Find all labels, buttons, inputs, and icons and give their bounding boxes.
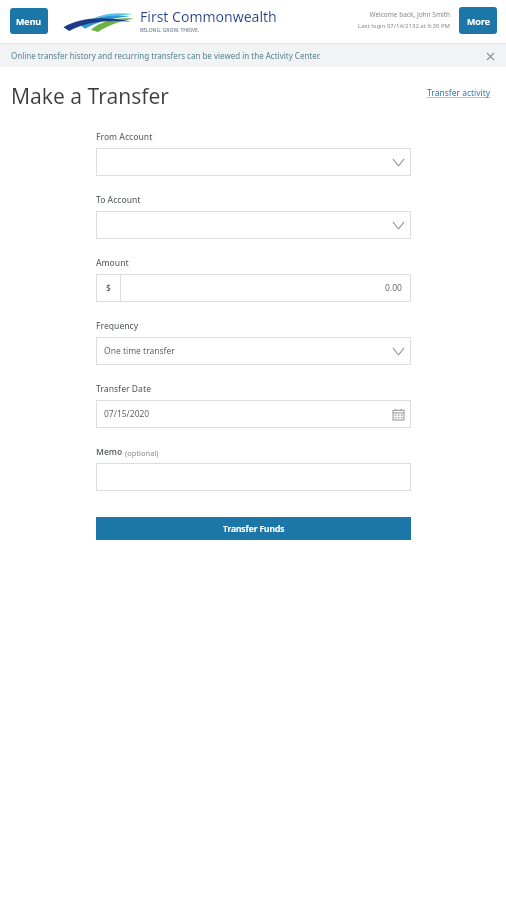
button[interactable] [96,211,411,239]
staticText: More [467,15,490,27]
button[interactable]: Transfer Funds [96,517,411,540]
staticText: From Account [96,131,153,143]
button[interactable]: $ [96,274,411,302]
staticText: 0.00 [385,282,402,294]
other: Pick date [385,400,411,428]
staticText: Make a Transfer [11,82,170,110]
staticText: Transfer Date [96,383,152,395]
staticText: Menu [16,15,42,27]
button[interactable]: Dismiss notification [482,48,498,64]
button[interactable]: Transfer activity [427,87,491,99]
button[interactable] [96,148,411,176]
button[interactable]: More [459,7,497,34]
staticText: First Commonwealth [140,7,277,26]
staticText: Amount [96,257,129,269]
staticText: (optional) [125,448,159,458]
staticText: Last login 07/14/2132 at 6:30 PM [358,22,450,30]
staticText: Welcome back, John Smith [369,10,450,19]
button[interactable]: One time transfer [96,337,411,365]
staticText: Online transfer history and recurring tr… [11,50,321,61]
staticText: Frequency [96,320,139,332]
button[interactable]: 07/15/2020 [96,400,411,428]
staticText: Transfer activity [427,87,491,99]
button[interactable]: Menu [10,8,48,34]
staticText: Transfer Funds [223,523,285,535]
staticText: Memo [96,446,123,458]
staticText: One time transfer [104,345,175,357]
staticText: To Account [96,194,141,206]
staticText: BELONG. GROW. THRIVE. [140,27,200,34]
button[interactable] [96,463,411,491]
staticText: $ [106,282,111,294]
staticText: 07/15/2020 [104,408,150,420]
